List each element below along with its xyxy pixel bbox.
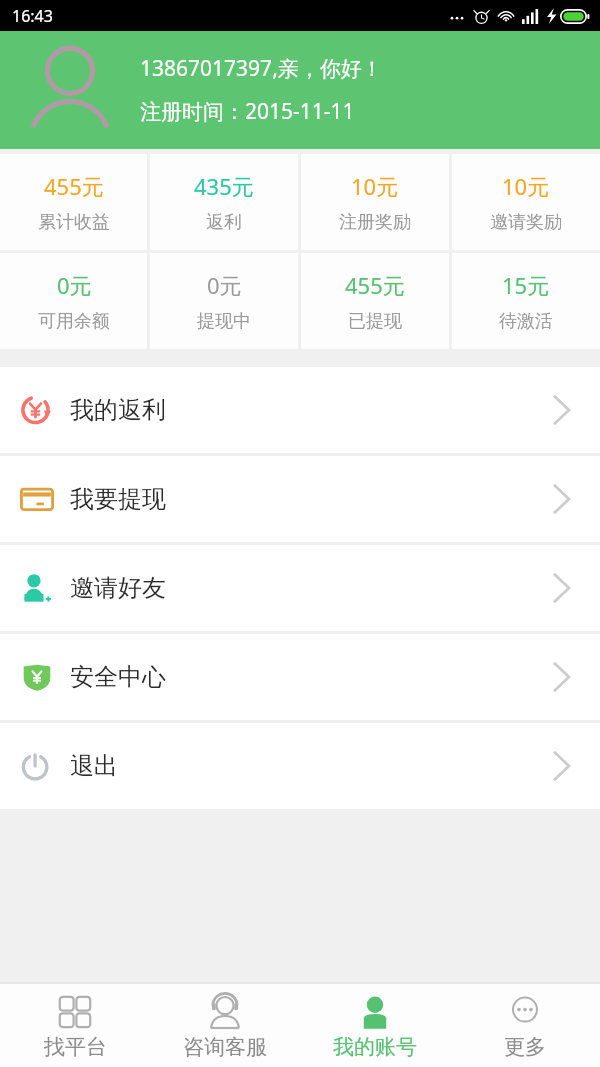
staticText: 安全中心 (70, 662, 166, 692)
staticText: 我的返利 (70, 395, 166, 425)
staticText: 累计收益 (38, 211, 110, 234)
staticText: 455元 (44, 171, 104, 201)
staticText: 返利 (206, 211, 242, 234)
button[interactable]: 我要提现 (0, 456, 600, 542)
button[interactable]: 455元 (0, 154, 147, 250)
staticText: 我的账号 (333, 1034, 417, 1060)
button[interactable]: 435元 (150, 154, 298, 250)
staticText: 邀请奖励 (490, 211, 562, 234)
button[interactable]: 0元 (0, 253, 147, 349)
staticText: 邀请好友 (70, 573, 166, 603)
button[interactable]: 退出 (0, 723, 600, 809)
staticText: 咨询客服 (183, 1034, 267, 1060)
button[interactable]: 我的返利 (0, 367, 600, 453)
staticText: 我要提现 (70, 484, 166, 514)
button[interactable]: 更多 (450, 984, 600, 1067)
button[interactable]: 安全中心 (0, 634, 600, 720)
staticText: 退出 (70, 751, 118, 781)
button[interactable]: 15元 (452, 253, 600, 349)
staticText: 更多 (504, 1034, 546, 1060)
button[interactable]: 找平台 (0, 984, 150, 1067)
staticText: 待激活 (499, 310, 553, 333)
staticText: 455元 (345, 270, 405, 300)
staticText: 注册时间：2015-11-11 (140, 97, 355, 126)
button[interactable]: 0元 (150, 253, 298, 349)
button[interactable]: 邀请好友 (0, 545, 600, 631)
button[interactable]: 455元 (301, 253, 449, 349)
staticText: 已提现 (348, 310, 402, 333)
staticText: 435元 (194, 171, 254, 201)
button[interactable]: 10元 (301, 154, 449, 250)
staticText: 提现中 (197, 310, 251, 333)
staticText: 16:43 (12, 5, 53, 27)
staticText: 找平台 (44, 1034, 107, 1060)
staticText: 10元 (351, 171, 399, 201)
staticText: 可用余额 (38, 310, 110, 333)
staticText: 13867017397,亲，你好！ (140, 54, 383, 83)
button[interactable]: 10元 (452, 154, 600, 250)
button[interactable]: 我的账号 (300, 984, 450, 1067)
staticText: 10元 (502, 171, 550, 201)
staticText: 0元 (207, 270, 242, 300)
button[interactable]: 咨询客服 (150, 984, 300, 1067)
staticText: 15元 (502, 270, 550, 300)
staticText: 注册奖励 (339, 211, 411, 234)
staticText: 0元 (57, 270, 92, 300)
